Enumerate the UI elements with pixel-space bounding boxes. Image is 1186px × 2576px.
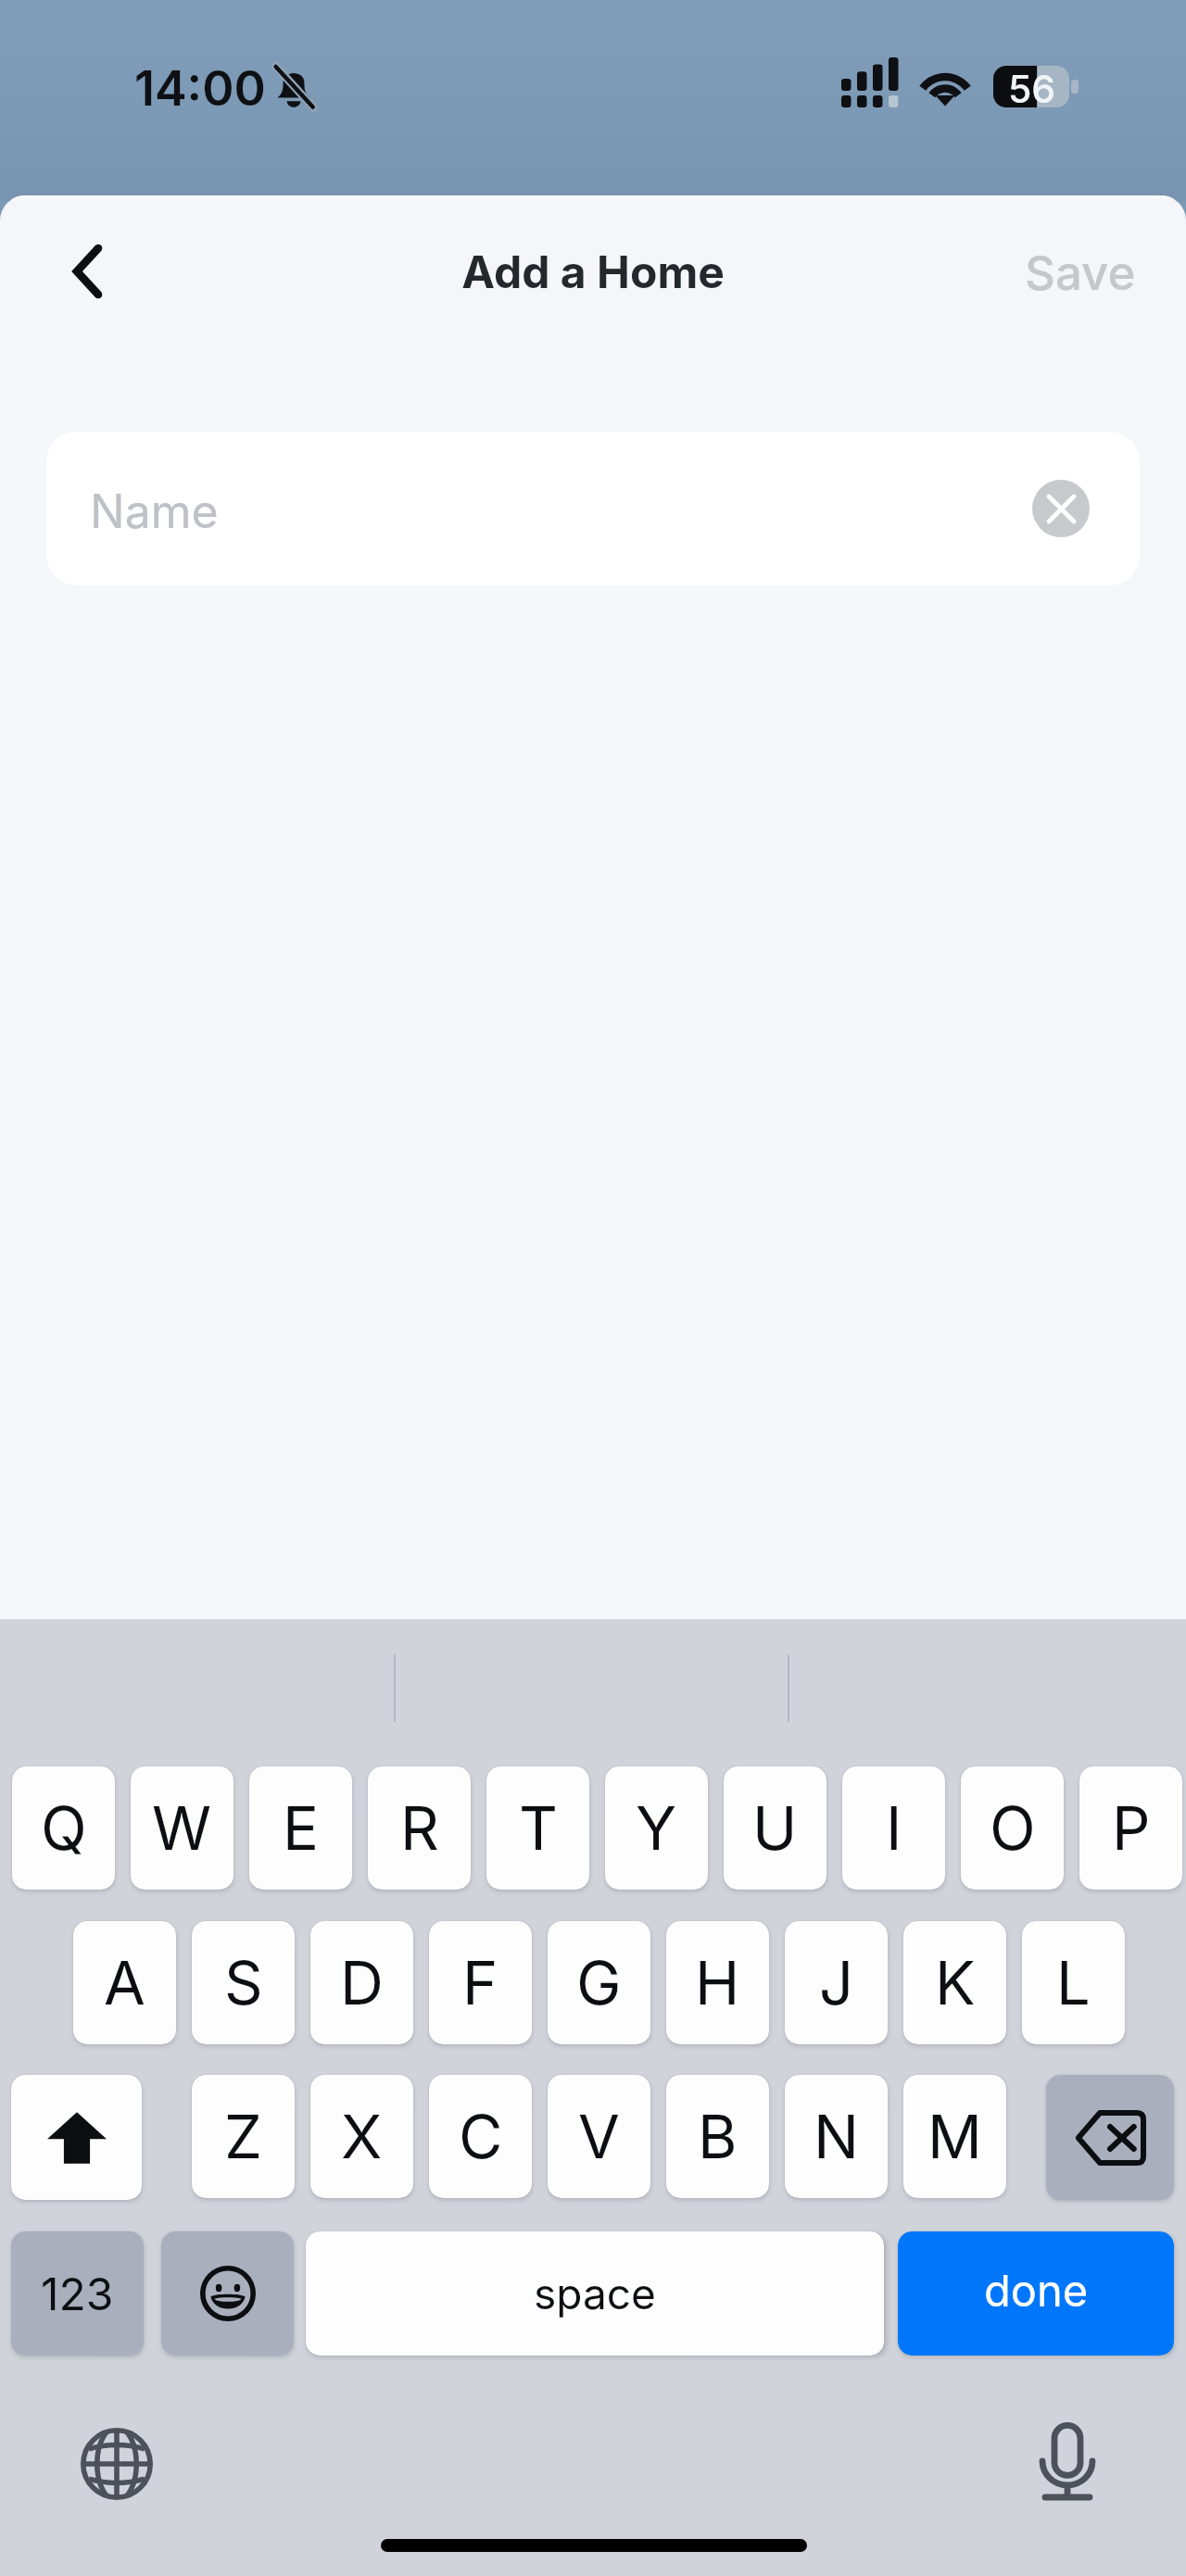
staticText: R xyxy=(400,1791,439,1865)
staticText: V xyxy=(578,2100,620,2173)
staticText: K xyxy=(935,1946,976,2019)
button[interactable]: Back xyxy=(44,218,130,325)
button[interactable]: Change keyboard xyxy=(76,2423,158,2505)
button[interactable]: L xyxy=(1022,1921,1125,2044)
staticText: M xyxy=(927,2100,982,2173)
button[interactable]: F xyxy=(429,1921,532,2044)
staticText: 56 xyxy=(1008,66,1056,112)
staticText: 123 xyxy=(41,2267,114,2320)
staticText: A xyxy=(104,1946,145,2019)
button[interactable]: I xyxy=(842,1766,945,1890)
staticText: O xyxy=(990,1791,1036,1865)
staticText: S xyxy=(224,1946,263,2019)
staticText: G xyxy=(576,1946,622,2019)
button[interactable]: A xyxy=(73,1921,176,2044)
staticText: T xyxy=(519,1791,558,1865)
button[interactable]: W xyxy=(131,1766,233,1890)
button[interactable]: Shift xyxy=(11,2075,142,2200)
staticText: Q xyxy=(41,1791,87,1865)
staticText: space xyxy=(534,2268,656,2319)
button[interactable]: Name xyxy=(46,432,1140,585)
button[interactable]: C xyxy=(429,2075,532,2198)
button[interactable]: B xyxy=(666,2075,769,2198)
staticText: Name xyxy=(90,484,219,539)
button[interactable]: X xyxy=(310,2075,413,2198)
staticText: Z xyxy=(224,2100,262,2173)
button[interactable]: H xyxy=(666,1921,769,2044)
button[interactable]: Save xyxy=(1025,229,1164,318)
staticText: I xyxy=(886,1791,902,1865)
button[interactable]: P xyxy=(1079,1766,1182,1890)
button[interactable]: 123 xyxy=(11,2231,144,2356)
staticText: D xyxy=(340,1946,384,2019)
button[interactable]: U xyxy=(724,1766,826,1890)
staticText: J xyxy=(819,1946,854,2019)
staticText: F xyxy=(462,1946,498,2019)
button[interactable]: Q xyxy=(12,1766,115,1890)
staticText: E xyxy=(283,1791,320,1865)
button[interactable]: K xyxy=(903,1921,1006,2044)
button[interactable]: G xyxy=(548,1921,650,2044)
staticText: Save xyxy=(1025,245,1136,302)
button[interactable]: S xyxy=(192,1921,295,2044)
staticText: L xyxy=(1056,1946,1091,2019)
button[interactable]: space xyxy=(306,2231,884,2356)
staticText: H xyxy=(695,1946,740,2019)
button[interactable]: R xyxy=(368,1766,471,1890)
button[interactable]: N xyxy=(785,2075,888,2198)
button[interactable]: Backspace xyxy=(1046,2075,1174,2200)
button[interactable]: done xyxy=(898,2231,1174,2356)
staticText: 14:00 xyxy=(134,59,266,118)
button[interactable]: Y xyxy=(605,1766,708,1890)
staticText: U xyxy=(752,1791,798,1865)
button[interactable]: V xyxy=(548,2075,650,2198)
button[interactable]: J xyxy=(785,1921,888,2044)
staticText: B xyxy=(698,2100,738,2173)
button[interactable]: E xyxy=(249,1766,352,1890)
staticText: N xyxy=(814,2100,859,2173)
button[interactable]: O xyxy=(961,1766,1064,1890)
staticText: Add a Home xyxy=(0,245,1186,298)
staticText: C xyxy=(459,2100,503,2173)
staticText: X xyxy=(341,2100,383,2173)
button[interactable]: Emoji xyxy=(161,2231,294,2356)
button[interactable]: Dictate xyxy=(1027,2422,1108,2504)
staticText: done xyxy=(984,2264,1089,2317)
staticText: P xyxy=(1112,1791,1151,1865)
button[interactable]: T xyxy=(486,1766,589,1890)
button[interactable]: Clear text xyxy=(1032,480,1090,537)
staticText: W xyxy=(152,1791,212,1865)
button[interactable]: D xyxy=(310,1921,413,2044)
staticText: Y xyxy=(636,1791,677,1865)
button[interactable]: M xyxy=(903,2075,1006,2198)
button[interactable]: Z xyxy=(192,2075,295,2198)
